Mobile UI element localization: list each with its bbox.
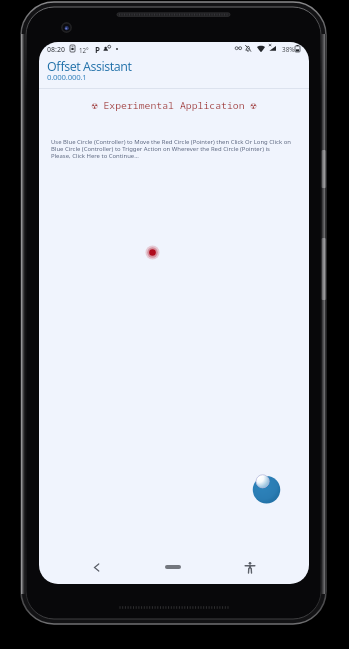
button[interactable]: Home [157, 551, 189, 583]
staticText: 38% [282, 45, 295, 54]
button[interactable]: Use Blue Circle (Controller) to Move the… [51, 138, 291, 160]
staticText: Offset Assistant [47, 58, 132, 75]
button[interactable]: Back [80, 551, 112, 583]
staticText: ☢ Experimental Application ☢ [39, 99, 309, 112]
button[interactable]: Accessibility [234, 551, 266, 583]
staticText: 08:20 [47, 45, 65, 55]
staticText: 12° [79, 46, 89, 54]
staticText: P [95, 44, 100, 55]
staticText: 0.000.000.1 [47, 72, 87, 83]
button[interactable]: Controller [253, 476, 281, 504]
